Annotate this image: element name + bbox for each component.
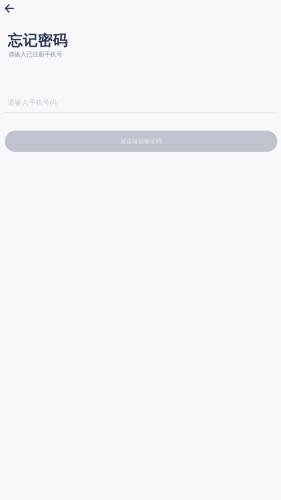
staticText: 忘记密码 xyxy=(8,31,68,50)
button[interactable]: Back xyxy=(0,0,22,19)
staticText: 请输入已注册手机号 xyxy=(8,50,62,58)
staticText: 请输入手机号码 xyxy=(8,98,57,107)
button[interactable]: 发送短信验证码 xyxy=(5,131,277,152)
staticText: 发送短信验证码 xyxy=(120,137,162,145)
